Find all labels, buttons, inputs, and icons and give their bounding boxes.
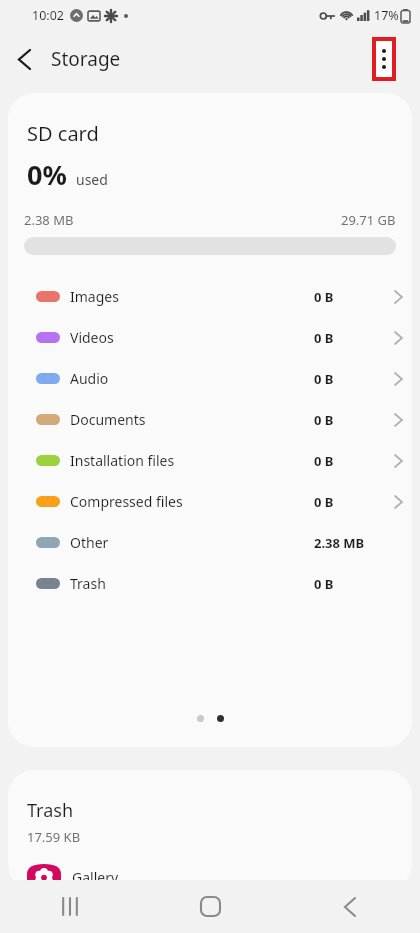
button[interactable]: Home [140, 880, 280, 933]
button[interactable]: Trash [8, 563, 412, 604]
button[interactable]: Images [8, 276, 412, 317]
button[interactable]: More options [376, 41, 392, 77]
staticText: 0 B [314, 493, 384, 511]
staticText: 2.38 MB [24, 211, 74, 229]
staticText: 0 B [314, 288, 384, 306]
staticText: used [76, 170, 108, 189]
staticText: Installation files [70, 451, 175, 470]
staticText: Trash [70, 574, 106, 593]
staticText: 2.38 MB [314, 534, 384, 552]
staticText: Trash [27, 798, 74, 823]
button[interactable]: Trash [8, 770, 412, 890]
button[interactable]: Recents [0, 880, 140, 933]
button[interactable]: Documents [8, 399, 412, 440]
staticText: Documents [70, 410, 146, 429]
button[interactable]: Back [0, 35, 48, 83]
button[interactable]: Videos [8, 317, 412, 358]
button[interactable]: Compressed files [8, 481, 412, 522]
staticText: Gallery [72, 868, 119, 887]
staticText: 0 B [314, 575, 384, 593]
button[interactable]: Installation files [8, 440, 412, 481]
staticText: 10:02 [32, 7, 64, 24]
staticText: Compressed files [70, 492, 183, 511]
staticText: 0 B [314, 329, 384, 347]
staticText: 0 B [314, 452, 384, 470]
staticText: Videos [70, 328, 114, 347]
staticText: 0% [27, 156, 67, 193]
staticText: 17% [374, 7, 399, 24]
staticText: Storage [51, 46, 121, 72]
staticText: SD card [27, 120, 99, 147]
staticText: 0 B [314, 370, 384, 388]
staticText: Images [70, 287, 119, 306]
button[interactable]: Other [8, 522, 412, 563]
button[interactable]: Audio [8, 358, 412, 399]
staticText: Other [70, 533, 109, 552]
staticText: Audio [70, 369, 109, 388]
button[interactable]: Back [280, 880, 420, 933]
staticText: 29.71 GB [341, 211, 396, 229]
staticText: 0 B [314, 411, 384, 429]
staticText: 17.59 KB [27, 828, 81, 846]
